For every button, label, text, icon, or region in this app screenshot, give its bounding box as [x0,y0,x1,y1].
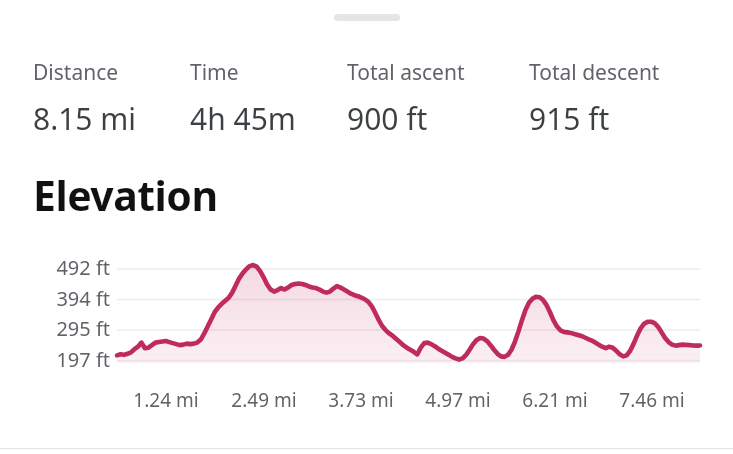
button[interactable]: Total ascent [347,58,529,139]
staticText: 915 ft [529,98,610,139]
staticText: 492 ft [56,254,110,281]
button[interactable]: Distance [33,58,190,139]
staticText: 1.24 mi [133,387,199,413]
staticText: 2.49 mi [231,387,297,413]
staticText: 3.73 mi [328,387,394,413]
staticText: Total ascent [347,58,465,87]
staticText: 4.97 mi [425,387,491,413]
staticText: 900 ft [347,98,428,139]
staticText: 6.21 mi [522,387,588,413]
button[interactable]: Total descent [529,58,699,139]
staticText: 197 ft [56,346,110,373]
staticText: 394 ft [56,285,110,312]
staticText: 295 ft [56,315,110,342]
staticText: Time [190,58,239,87]
button[interactable]: Time [190,58,347,139]
staticText: 4h 45m [190,98,296,139]
staticText: Total descent [529,58,660,87]
staticText: Elevation [33,167,218,223]
staticText: 7.46 mi [619,387,685,413]
staticText: Distance [33,58,119,87]
button[interactable]: Drag handle [334,14,400,21]
staticText: 8.15 mi [33,98,137,139]
